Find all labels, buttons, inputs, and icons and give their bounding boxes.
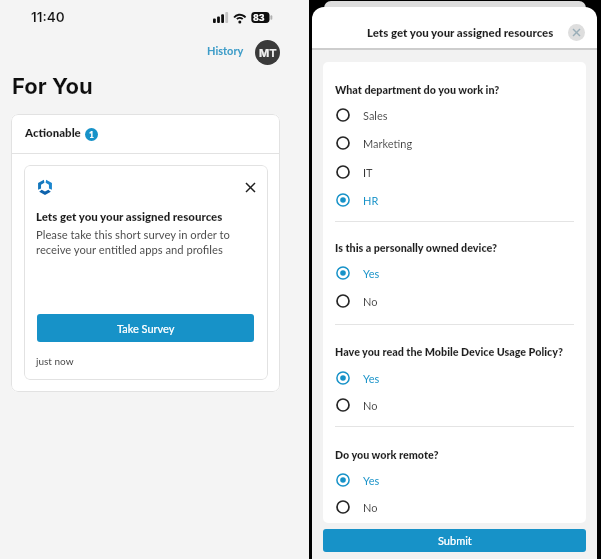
staticText: For You [12,73,93,100]
button[interactable]: No [336,495,574,519]
staticText: History [207,44,244,57]
button[interactable]: Dismiss [240,177,260,197]
staticText: Lets get you your assigned resources [367,26,554,40]
staticText: HR [363,194,379,207]
staticText: Yes [363,267,380,280]
staticText: 83 [253,12,265,23]
button[interactable]: Yes [336,468,574,492]
staticText: No [363,501,378,514]
button[interactable]: No [336,289,574,313]
staticText: IT [363,166,373,179]
staticText: Take Survey [117,322,175,335]
staticText: Please take this short survey in order t… [36,228,230,256]
staticText: No [363,399,378,412]
button[interactable]: History [203,41,248,60]
button[interactable]: Take Survey [37,314,254,342]
staticText: No [363,295,378,308]
staticText: MT [259,46,277,59]
staticText: 11:40 [31,9,65,25]
button[interactable]: Profile [255,40,280,65]
staticText: 1 [89,130,94,140]
staticText: Yes [363,474,380,487]
staticText: Is this a personally owned device? [335,241,498,254]
staticText: just now [36,355,74,367]
button[interactable]: Yes [336,261,574,285]
staticText: Submit [438,534,472,547]
button[interactable]: No [336,393,574,417]
staticText: Sales [363,109,388,122]
button[interactable]: Yes [336,366,574,390]
staticText: Marketing [363,137,413,150]
staticText: Actionable [25,126,81,140]
button[interactable]: Close [568,24,585,41]
button[interactable]: Sales [336,103,574,127]
button[interactable]: Submit [323,529,586,552]
staticText: Yes [363,372,380,385]
button[interactable]: HR [336,188,574,212]
staticText: Lets get you your assigned resources [36,210,223,224]
button[interactable]: IT [336,160,574,184]
staticText: Have you read the Mobile Device Usage Po… [335,345,563,358]
staticText: Do you work remote? [335,448,439,461]
staticText: What department do you work in? [335,83,500,96]
button[interactable]: Marketing [336,131,574,155]
